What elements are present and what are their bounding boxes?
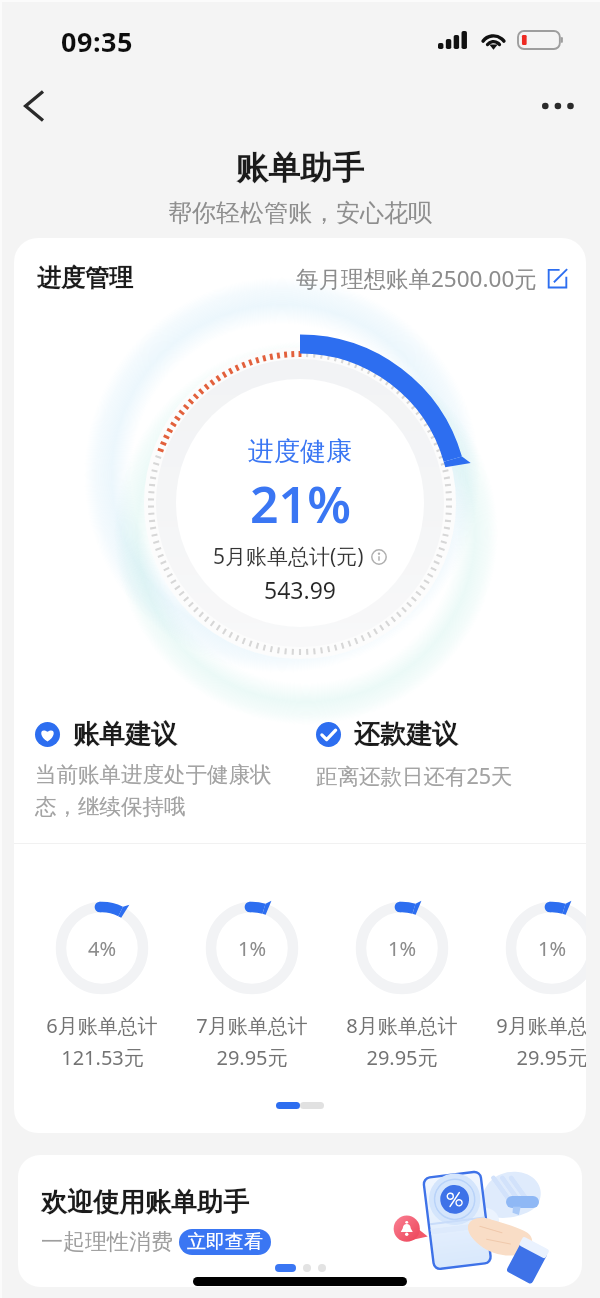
staticText: 1% [538, 935, 567, 962]
button[interactable]: 1% [177, 898, 327, 1071]
staticText: 29.95元 [366, 1044, 438, 1071]
staticText: 距离还款日还有25天 [316, 761, 513, 790]
staticText: 立即查看 [187, 1230, 263, 1254]
button[interactable]: 每月理想账单2500.00元 [296, 263, 568, 294]
button[interactable]: More options [532, 80, 584, 132]
staticText: 7月账单总计 [196, 1012, 308, 1039]
staticText: 进度健康 [248, 435, 352, 468]
staticText: 帮你轻松管账，安心花呗 [168, 198, 432, 228]
staticText: 当前账单进度处于健康状态，继续保持哦 [35, 761, 288, 820]
staticText: 29.95元 [516, 1044, 586, 1071]
staticText: 1% [388, 935, 417, 962]
staticText: 543.99 [264, 574, 336, 605]
staticText: 121.53元 [61, 1044, 144, 1071]
staticText: 6月账单总计 [46, 1012, 158, 1039]
staticText: 欢迎使用账单助手 [41, 1186, 249, 1219]
staticText: 账单建议 [73, 718, 177, 751]
staticText: 29.95元 [216, 1044, 288, 1071]
staticText: 09:35 [61, 23, 133, 60]
button[interactable]: 立即查看 [179, 1229, 271, 1255]
staticText: 一起理性消费 [41, 1228, 173, 1256]
button[interactable]: 4% [27, 898, 177, 1071]
button[interactable]: 欢迎使用账单助手 [18, 1155, 582, 1287]
staticText: 9月账单总计 [496, 1012, 586, 1039]
staticText: 还款建议 [354, 718, 458, 751]
staticText: 4% [88, 935, 117, 962]
staticText: 账单助手 [236, 148, 364, 188]
staticText: 8月账单总计 [346, 1012, 458, 1039]
staticText: 进度管理 [37, 263, 133, 293]
staticText: 1% [238, 935, 267, 962]
staticText: 5月账单总计(元) [213, 542, 364, 571]
staticText: 每月理想账单2500.00元 [296, 263, 537, 294]
staticText: 21% [250, 470, 351, 538]
button[interactable]: 1% [477, 898, 586, 1071]
button[interactable]: Back [8, 80, 60, 132]
button[interactable]: 1% [327, 898, 477, 1071]
